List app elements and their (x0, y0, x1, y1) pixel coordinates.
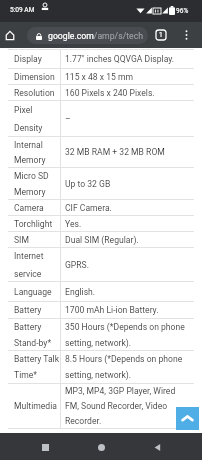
staticText: 115 x 48 x 15 mm (65, 72, 134, 82)
staticText: CIF Camera. (65, 203, 112, 213)
staticText: – (65, 114, 71, 124)
staticText: English. (65, 287, 96, 297)
staticText: 32 MB RAM + 32 MB ROM (65, 147, 165, 157)
staticText: 1 (159, 31, 163, 39)
button[interactable]: Tabs (152, 26, 170, 44)
staticText: Pixel Density (14, 105, 59, 133)
staticText: Resolution (14, 88, 55, 98)
staticText: Language (14, 287, 52, 297)
staticText: Internet service (14, 251, 59, 279)
button[interactable]: Home (0, 25, 20, 45)
staticText: Up to 32 GB (65, 179, 111, 189)
button[interactable]: Home (90, 436, 112, 458)
button[interactable]: Recents (34, 436, 56, 458)
staticText: Dual SIM (Regular). (65, 235, 139, 245)
staticText: 350 Hours (*Depends on phone setting, ne… (65, 322, 188, 348)
staticText: 8.5 Hours (*Depends on phone setting, ne… (65, 354, 188, 380)
staticText: Battery Talk Time* (14, 354, 59, 380)
staticText: GPRS. (65, 260, 89, 270)
staticText: google.com/amp/s/tech (48, 31, 144, 41)
staticText: 1.77" inches QQVGA Display. (65, 54, 175, 64)
button[interactable]: More options (177, 26, 195, 44)
staticText: Multimedia (14, 401, 57, 411)
staticText: Micro SD Memory (14, 171, 59, 197)
staticText: Dimension (14, 72, 55, 82)
staticText: MP3, MP4, 3GP Player, Wired FM, Sound Re… (65, 386, 188, 426)
button[interactable]: Scroll to top (176, 407, 199, 430)
staticText: 160 Pixels x 240 Pixels. (65, 88, 155, 98)
staticText: Camera (14, 203, 44, 213)
staticText: Torchlight (14, 219, 53, 229)
staticText: Internal Memory (14, 140, 59, 165)
staticText: SIM (14, 235, 29, 245)
staticText: Display (14, 54, 42, 64)
staticText: 1700 mAh Li-ion Battery. (65, 305, 159, 315)
staticText: Yes. (65, 219, 82, 229)
staticText: Battery (14, 305, 42, 315)
button[interactable]: Back (146, 436, 168, 458)
staticText: 96% (176, 7, 189, 15)
staticText: 5:09 AM (10, 6, 35, 14)
staticText: Battery Stand-by* (14, 322, 59, 348)
button[interactable]: google.com/amp/s/tech (27, 27, 148, 44)
